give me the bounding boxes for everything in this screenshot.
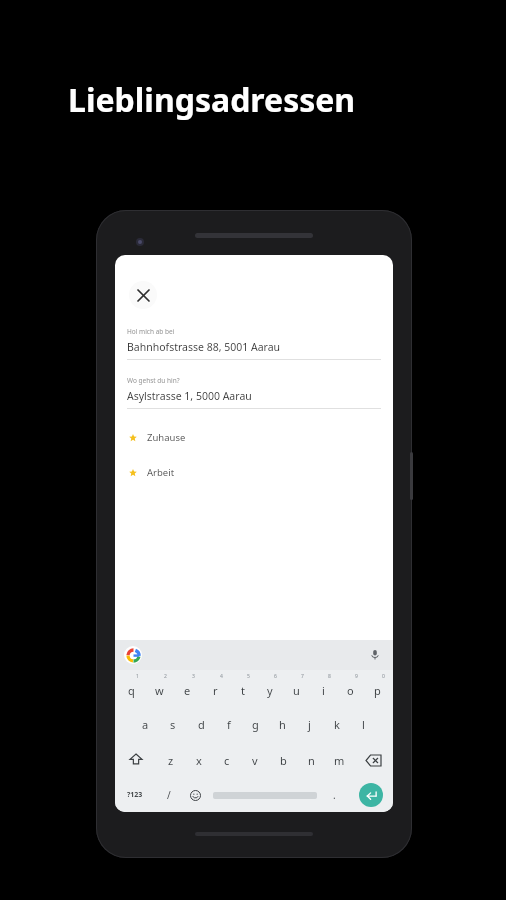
- button[interactable]: j: [296, 706, 323, 742]
- staticText: t: [241, 683, 245, 698]
- button[interactable]: v: [241, 742, 269, 778]
- staticText: o: [347, 683, 354, 698]
- button[interactable]: Zuhause: [129, 431, 379, 444]
- button[interactable]: Google search: [124, 646, 142, 664]
- staticText: q: [128, 683, 135, 698]
- staticText: 1: [136, 673, 139, 680]
- staticText: p: [374, 683, 381, 698]
- staticText: Wo gehst du hin?: [127, 376, 180, 385]
- button[interactable]: b: [269, 742, 297, 778]
- staticText: a: [142, 717, 149, 732]
- button[interactable]: 1: [117, 670, 145, 706]
- button[interactable]: n: [297, 742, 325, 778]
- staticText: 0: [382, 673, 385, 680]
- staticText: .: [333, 788, 336, 802]
- staticText: y: [267, 683, 273, 698]
- staticText: x: [196, 753, 202, 768]
- button[interactable]: 0: [364, 670, 391, 706]
- staticText: Bahnhofstrasse 88, 5001 Aarau: [127, 340, 281, 354]
- staticText: Arbeit: [147, 466, 175, 479]
- button[interactable]: Hol mich ab bei: [127, 327, 381, 360]
- button[interactable]: 3: [173, 670, 201, 706]
- staticText: n: [308, 753, 315, 768]
- button[interactable]: g: [242, 706, 269, 742]
- staticText: c: [224, 753, 230, 768]
- staticText: i: [322, 683, 325, 698]
- staticText: k: [334, 717, 340, 732]
- button[interactable]: Voice input: [367, 647, 383, 663]
- button[interactable]: Backspace: [353, 742, 393, 778]
- button[interactable]: 7: [283, 670, 310, 706]
- button[interactable]: m: [325, 742, 353, 778]
- button[interactable]: l: [350, 706, 377, 742]
- button[interactable]: k: [323, 706, 350, 742]
- button[interactable]: Space: [209, 778, 321, 812]
- button[interactable]: Enter: [348, 778, 393, 812]
- staticText: 8: [328, 673, 331, 680]
- staticText: 4: [220, 673, 223, 680]
- staticText: Asylstrasse 1, 5000 Aarau: [127, 389, 252, 403]
- button[interactable]: h: [269, 706, 296, 742]
- staticText: d: [198, 717, 205, 732]
- staticText: 3: [192, 673, 195, 680]
- button[interactable]: c: [213, 742, 241, 778]
- button[interactable]: Shift: [115, 742, 156, 778]
- button[interactable]: .: [321, 778, 348, 812]
- staticText: b: [280, 753, 287, 768]
- staticText: f: [227, 717, 231, 732]
- button[interactable]: 6: [256, 670, 283, 706]
- button[interactable]: 2: [145, 670, 173, 706]
- staticText: Zuhause: [147, 431, 186, 444]
- staticText: h: [279, 717, 286, 732]
- button[interactable]: 4: [201, 670, 229, 706]
- staticText: ?123: [127, 790, 143, 800]
- staticText: Lieblingsadressen: [68, 78, 356, 122]
- staticText: l: [362, 717, 365, 732]
- staticText: v: [252, 753, 258, 768]
- button[interactable]: f: [215, 706, 242, 742]
- button[interactable]: s: [159, 706, 187, 742]
- staticText: j: [308, 717, 311, 732]
- button[interactable]: Close: [129, 281, 157, 309]
- button[interactable]: Arbeit: [129, 466, 379, 479]
- staticText: Hol mich ab bei: [127, 327, 175, 336]
- button[interactable]: /: [155, 778, 182, 812]
- staticText: s: [170, 717, 176, 732]
- staticText: r: [213, 683, 218, 698]
- button[interactable]: Wo gehst du hin?: [127, 376, 381, 409]
- button[interactable]: 8: [310, 670, 337, 706]
- staticText: 9: [355, 673, 358, 680]
- staticText: /: [167, 788, 171, 802]
- staticText: 6: [274, 673, 277, 680]
- staticText: 2: [164, 673, 167, 680]
- staticText: m: [334, 753, 345, 768]
- staticText: 5: [247, 673, 250, 680]
- button[interactable]: z: [156, 742, 185, 778]
- button[interactable]: 9: [337, 670, 364, 706]
- staticText: u: [293, 683, 300, 698]
- button[interactable]: d: [187, 706, 215, 742]
- button[interactable]: 5: [229, 670, 256, 706]
- staticText: 7: [301, 673, 304, 680]
- staticText: e: [184, 683, 191, 698]
- button[interactable]: Emoji: [182, 778, 209, 812]
- button[interactable]: a: [131, 706, 159, 742]
- staticText: w: [155, 683, 164, 698]
- staticText: g: [252, 717, 259, 732]
- staticText: z: [168, 753, 174, 768]
- button[interactable]: ?123: [115, 778, 155, 812]
- button[interactable]: x: [185, 742, 213, 778]
